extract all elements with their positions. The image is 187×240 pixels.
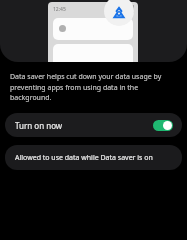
button[interactable]: Turn on now — [5, 113, 182, 137]
other: Data saver — [104, 0, 134, 26]
staticText: Data saver helps cut down your data usag… — [10, 72, 175, 102]
button[interactable]: Allowed to use data while Data saver is … — [5, 145, 182, 170]
staticText: Turn on now — [15, 120, 63, 131]
staticText: 12:45 — [53, 6, 66, 13]
staticText: Allowed to use data while Data saver is … — [15, 153, 153, 163]
